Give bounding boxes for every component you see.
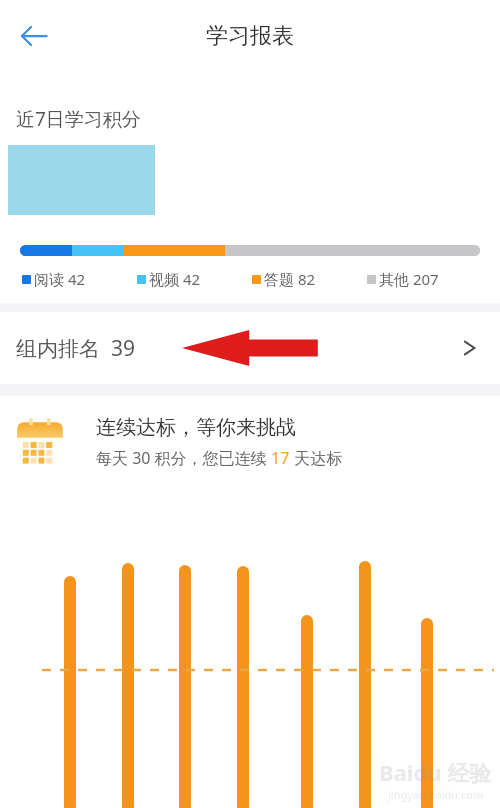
button[interactable]: 组内排名 39 [0, 312, 500, 384]
staticText: 17 [271, 447, 290, 469]
button[interactable]: Back [6, 8, 62, 64]
staticText: 每天 30 积分，您已连续 [96, 447, 271, 469]
button[interactable]: 连续达标，等你来挑战 [0, 396, 500, 488]
staticText: 其他 207 [379, 269, 439, 289]
staticText: 学习报表 [206, 22, 294, 50]
staticText: 近7日学习积分 [16, 106, 141, 132]
staticText: 组内排名 39 [16, 334, 135, 363]
staticText: 天达标 [290, 447, 343, 469]
staticText: 答题 82 [264, 269, 316, 289]
staticText: 阅读 42 [34, 269, 86, 289]
staticText: jingyan.baidu.com [388, 787, 484, 802]
staticText: Baidu 经验 [379, 757, 492, 787]
staticText: 视频 42 [149, 269, 201, 289]
staticText: 连续达标，等你来挑战 [96, 415, 296, 440]
